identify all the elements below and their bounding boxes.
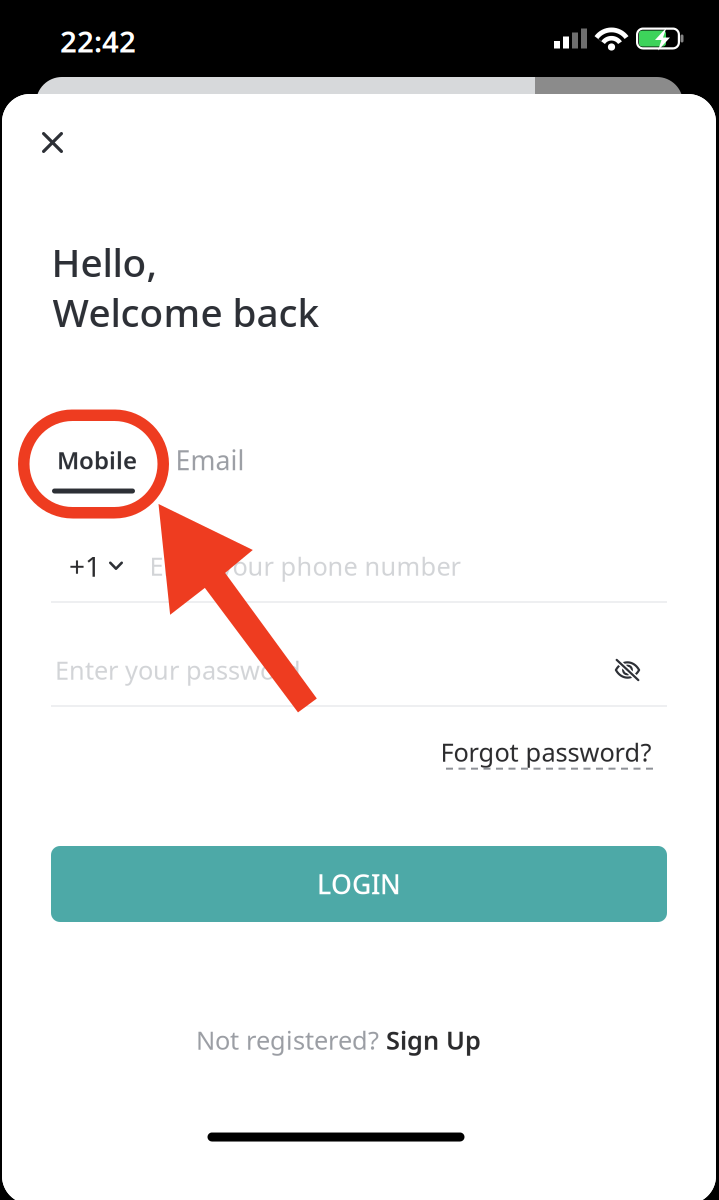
staticText: Hello,: [51, 236, 157, 288]
staticText: Not registered?: [196, 1023, 386, 1057]
staticText: LOGIN: [317, 866, 401, 902]
staticText: Sign Up: [386, 1023, 481, 1057]
button[interactable]: Close: [14, 104, 90, 180]
button[interactable]: Mobile: [52, 432, 148, 508]
staticText: 22:42: [60, 21, 136, 61]
button[interactable]: Show password: [597, 640, 657, 700]
button[interactable]: Forgot password?: [445, 735, 659, 785]
button[interactable]: LOGIN: [51, 846, 667, 922]
staticText: Welcome back: [52, 286, 319, 338]
staticText: Enter your password: [55, 653, 301, 687]
staticText: Mobile: [57, 444, 137, 476]
button[interactable]: Select country code: [69, 538, 139, 594]
staticText: +1: [69, 547, 101, 585]
staticText: Enter your phone number: [149, 549, 460, 583]
button[interactable]: Email: [170, 432, 256, 508]
button[interactable]: Sign Up: [386, 1023, 481, 1057]
staticText: Email: [175, 442, 244, 478]
staticText: Forgot password?: [440, 735, 651, 769]
